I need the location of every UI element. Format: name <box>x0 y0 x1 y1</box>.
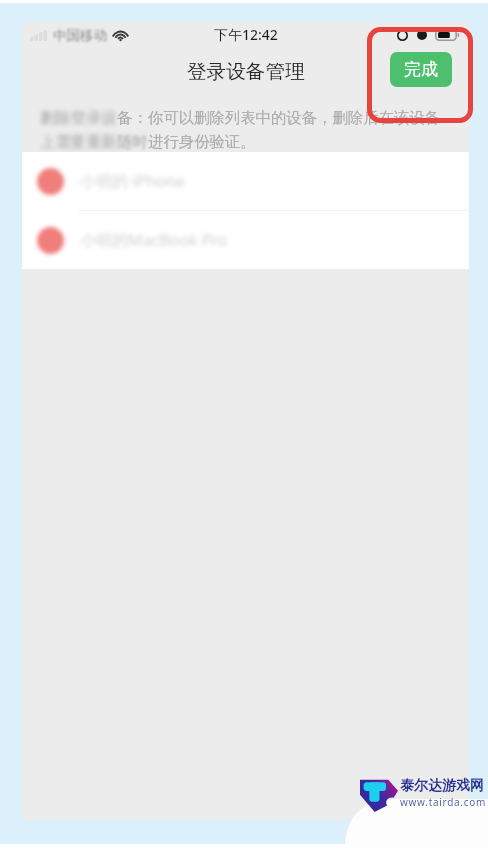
staticText: 备：你可以删除列表中的设备，删除后在该设备 <box>117 108 441 127</box>
staticText: 下午12:42 <box>214 25 278 44</box>
staticText: 完成 <box>404 59 438 80</box>
staticText: 上需要重新 <box>40 132 117 151</box>
staticText: 删除登录设 <box>40 108 117 127</box>
staticText: www.tairda.com <box>400 795 487 809</box>
staticText: 小明的MacBook Pro <box>80 229 228 251</box>
staticText: 登录设备管理 <box>187 59 305 84</box>
staticText: 中国移动 <box>53 27 107 44</box>
button[interactable]: 小明的MacBook Pro <box>22 211 469 269</box>
button[interactable]: 完成 <box>390 52 452 87</box>
staticText: 进行身份验证。 <box>148 132 256 151</box>
button[interactable]: 小明的 iPhone <box>22 152 469 210</box>
staticText: 泰尔达游戏网 <box>400 777 484 795</box>
staticText: 小明的 iPhone <box>80 170 185 192</box>
staticText: 随时 <box>117 132 148 151</box>
